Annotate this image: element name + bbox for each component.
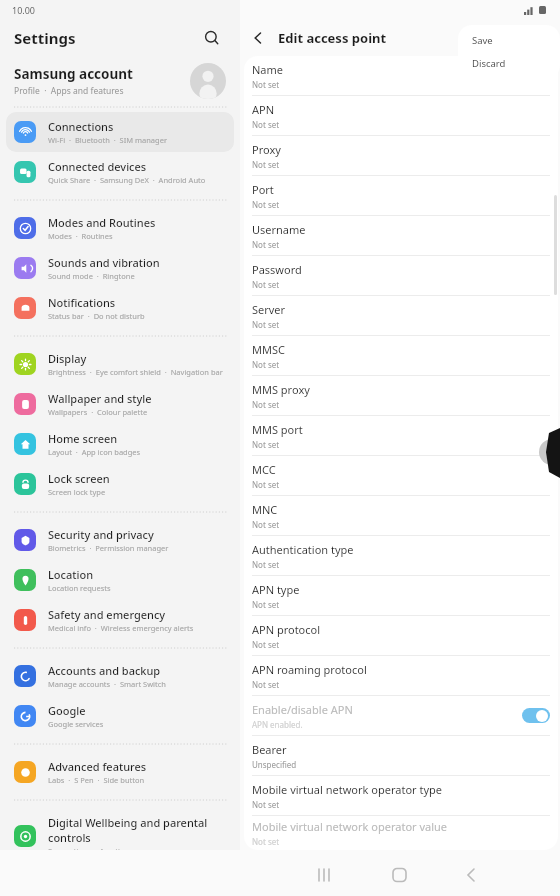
button[interactable]: Google (6, 696, 234, 736)
staticText: Manage accounts · Smart Switch (48, 679, 166, 689)
staticText: Labs · S Pen · Side button (48, 775, 145, 785)
staticText: Google services (48, 719, 104, 729)
button[interactable]: Authentication type (244, 536, 558, 575)
button[interactable]: Discard (458, 52, 560, 75)
staticText: Screen lock type (48, 487, 106, 497)
button[interactable]: Mobile virtual network operator value (244, 816, 558, 850)
staticText: Google (48, 703, 86, 718)
staticText: APN enabled. (252, 719, 303, 730)
staticText: Username (252, 222, 306, 237)
button[interactable]: MNC (244, 496, 558, 535)
button[interactable]: Search (198, 24, 226, 52)
button[interactable]: Safety and emergency (6, 600, 234, 640)
button[interactable] (522, 708, 550, 723)
button[interactable]: Home screen (6, 424, 234, 464)
staticText: Connected devices (48, 159, 147, 174)
staticText: Proxy (252, 142, 281, 157)
staticText: Status bar · Do not disturb (48, 311, 145, 321)
staticText: Mobile virtual network operator type (252, 782, 442, 797)
staticText: Not set (252, 399, 280, 410)
staticText: Digital Wellbeing and parental controls (48, 815, 226, 845)
staticText: Wallpaper and style (48, 391, 152, 406)
staticText: Authentication type (252, 542, 354, 557)
button[interactable]: Enable/disable APN (244, 696, 558, 735)
staticText: Not set (252, 239, 280, 250)
staticText: Unspecified (252, 759, 297, 770)
staticText: Not set (252, 359, 280, 370)
button[interactable]: MMS proxy (244, 376, 558, 415)
staticText: Security and privacy (48, 527, 154, 542)
staticText: Lock screen (48, 471, 110, 486)
staticText: Password (252, 262, 302, 277)
staticText: Save (472, 34, 493, 47)
staticText: Safety and emergency (48, 607, 166, 622)
staticText: MMSC (252, 342, 285, 357)
staticText: MMS port (252, 422, 303, 437)
button[interactable]: Connected devices (6, 152, 234, 192)
staticText: Connections (48, 119, 114, 134)
staticText: Profile · Apps and features (14, 85, 124, 97)
staticText: Not set (252, 439, 280, 450)
staticText: Bearer (252, 742, 287, 757)
staticText: Port (252, 182, 274, 197)
staticText: Medical info · Wireless emergency alerts (48, 623, 194, 633)
button[interactable]: Port (244, 176, 558, 215)
staticText: Not set (252, 159, 280, 170)
staticText: Home screen (48, 431, 118, 446)
staticText: Accounts and backup (48, 663, 161, 678)
button[interactable]: Modes and Routines (6, 208, 234, 248)
staticText: Location (48, 567, 94, 582)
staticText: Samsung account (14, 65, 133, 83)
button[interactable]: Save (458, 29, 560, 52)
button[interactable]: APN type (244, 576, 558, 615)
staticText: 10.00 (12, 4, 36, 16)
staticText: Mobile virtual network operator value (252, 819, 448, 834)
button[interactable]: Back (244, 24, 272, 52)
button[interactable]: MMSC (244, 336, 558, 375)
button[interactable]: Accounts and backup (6, 656, 234, 696)
staticText: Not set (252, 639, 280, 650)
button[interactable]: Notifications (6, 288, 234, 328)
button[interactable]: Wallpaper and style (6, 384, 234, 424)
button[interactable]: Sounds and vibration (6, 248, 234, 288)
staticText: Sound mode · Ringtone (48, 271, 135, 281)
staticText: Not set (252, 479, 280, 490)
staticText: Not set (252, 799, 280, 810)
button[interactable]: Connections (6, 112, 234, 152)
staticText: Name (252, 62, 284, 77)
button[interactable]: Security and privacy (6, 520, 234, 560)
button[interactable]: Advanced features (6, 752, 234, 792)
button[interactable]: Mobile virtual network operator type (244, 776, 558, 815)
button[interactable]: Digital Wellbeing and parental controls (6, 808, 234, 863)
staticText: Not set (252, 836, 280, 847)
staticText: APN roaming protocol (252, 662, 367, 677)
staticText: Not set (252, 119, 280, 130)
button[interactable]: MCC (244, 456, 558, 495)
button[interactable]: Password (244, 256, 558, 295)
button[interactable]: Samsung account (0, 56, 240, 106)
button[interactable]: Server (244, 296, 558, 335)
button[interactable]: Proxy (244, 136, 558, 175)
staticText: Not set (252, 519, 280, 530)
staticText: Not set (252, 599, 280, 610)
button[interactable]: Username (244, 216, 558, 255)
staticText: APN protocol (252, 622, 321, 637)
button[interactable]: APN (244, 96, 558, 135)
button[interactable]: Name (244, 56, 558, 95)
staticText: Biometrics · Permission manager (48, 543, 169, 553)
staticText: Not set (252, 79, 280, 90)
button[interactable]: APN roaming protocol (244, 656, 558, 695)
staticText: Location requests (48, 583, 111, 593)
staticText: Sounds and vibration (48, 255, 160, 270)
button[interactable]: APN protocol (244, 616, 558, 655)
staticText: Edit access point (278, 29, 387, 47)
button[interactable]: Display (6, 344, 234, 384)
staticText: Brightness · Eye comfort shield · Naviga… (48, 367, 223, 377)
button[interactable]: Lock screen (6, 464, 234, 504)
button[interactable]: Location (6, 560, 234, 600)
button[interactable]: Bearer (244, 736, 558, 775)
button[interactable]: MMS port (244, 416, 558, 455)
staticText: Not set (252, 319, 280, 330)
staticText: Not set (252, 679, 280, 690)
staticText: Wallpapers · Colour palette (48, 407, 148, 417)
